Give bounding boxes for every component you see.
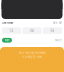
staticText: Start — [4, 38, 9, 42]
button[interactable]: Start — [2, 38, 12, 43]
staticText: 56 — [50, 29, 54, 32]
staticText: Your weekly summary — [18, 51, 45, 54]
staticText: Overview — [2, 21, 13, 24]
button[interactable]: 34 — [22, 27, 42, 34]
staticText: is ready to view — [22, 55, 42, 58]
button[interactable]: 12 — [2, 27, 21, 34]
staticText: More — [55, 38, 62, 42]
staticText: 12 — [9, 29, 13, 32]
staticText: See all — [53, 21, 62, 24]
button[interactable]: 56 — [43, 27, 62, 34]
staticText: 34 — [30, 29, 34, 32]
button[interactable]: See all — [53, 21, 62, 24]
button[interactable]: More — [55, 38, 62, 43]
